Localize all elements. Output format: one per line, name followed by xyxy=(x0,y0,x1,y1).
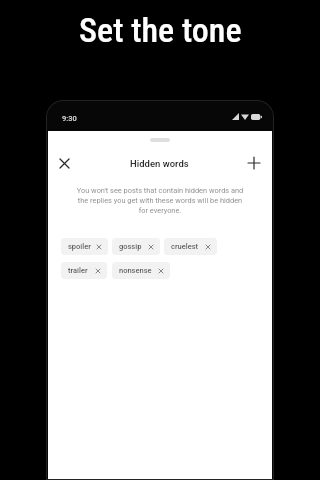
button[interactable]: spoiler xyxy=(61,238,108,255)
button[interactable]: gossip xyxy=(112,238,160,255)
button[interactable]: Close xyxy=(55,154,73,172)
staticText: spoiler xyxy=(68,242,97,251)
staticText: 9:30 xyxy=(62,114,77,123)
staticText: Hidden words xyxy=(130,158,189,169)
staticText: nonsense xyxy=(119,266,159,275)
staticText: Set the tone xyxy=(79,10,242,50)
button[interactable]: cruelest xyxy=(164,238,217,255)
button[interactable]: trailer xyxy=(61,262,107,279)
button[interactable]: Add word xyxy=(245,154,263,172)
staticText: You won't see posts that contain hidden … xyxy=(76,186,244,215)
staticText: gossip xyxy=(119,242,149,251)
staticText: cruelest xyxy=(171,242,206,251)
button[interactable]: nonsense xyxy=(112,262,170,279)
staticText: trailer xyxy=(68,266,96,275)
